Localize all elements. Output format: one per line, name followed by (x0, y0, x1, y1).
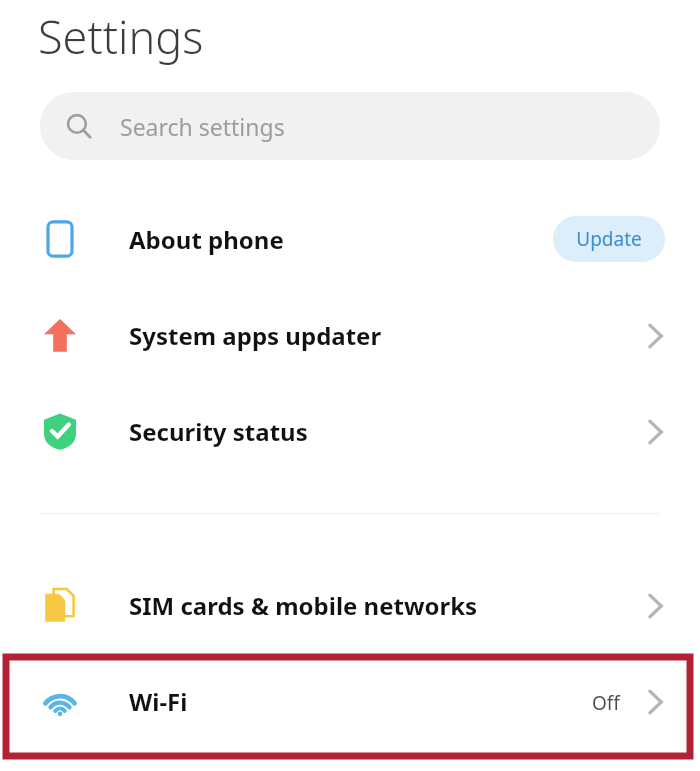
staticText: System apps updater (129, 319, 382, 352)
staticText: Settings (38, 6, 204, 67)
staticText: Update (576, 226, 642, 252)
staticText: Off (592, 690, 620, 716)
staticText: Wi-Fi (129, 685, 188, 718)
button[interactable]: Update (553, 216, 665, 262)
button[interactable]: Search settings (40, 92, 660, 160)
button[interactable]: SIM cards & mobile networks (0, 567, 700, 643)
staticText: Security status (129, 415, 308, 448)
button[interactable]: Security status (0, 393, 700, 469)
button[interactable]: System apps updater (0, 297, 700, 373)
button[interactable]: Wi-Fi (0, 663, 700, 739)
other: Open (645, 687, 667, 717)
button[interactable]: About phone (0, 201, 700, 277)
staticText: About phone (129, 223, 284, 256)
other: Open (645, 321, 667, 351)
staticText: Search settings (120, 111, 285, 142)
other: Open (645, 591, 667, 621)
other: Open (645, 417, 667, 447)
staticText: SIM cards & mobile networks (129, 589, 478, 622)
